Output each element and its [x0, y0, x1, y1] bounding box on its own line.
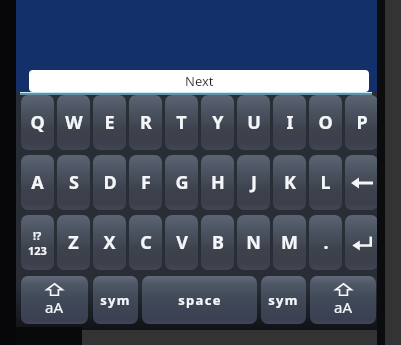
button[interactable]: sym	[261, 276, 306, 324]
staticText: N	[246, 230, 261, 255]
button[interactable]: F	[129, 155, 162, 210]
other: Backspace	[351, 173, 373, 193]
button[interactable]: U	[237, 95, 270, 150]
staticText: M	[281, 230, 298, 255]
staticText: R	[140, 110, 152, 135]
button[interactable]: B	[201, 215, 234, 270]
staticText: space	[178, 291, 222, 309]
staticText: aA	[334, 297, 353, 317]
button[interactable]: D	[93, 155, 126, 210]
button[interactable]: N	[237, 215, 270, 270]
staticText: O	[318, 110, 333, 135]
button[interactable]: Enter	[345, 215, 378, 270]
button[interactable]: T	[165, 95, 198, 150]
staticText: A	[31, 170, 44, 195]
staticText: Q	[30, 110, 45, 135]
staticText: 123	[28, 243, 47, 258]
other: Symbols and numbers	[28, 228, 47, 258]
button[interactable]: Y	[201, 95, 234, 150]
staticText: G	[175, 170, 189, 195]
button[interactable]: H	[201, 155, 234, 210]
staticText: .	[323, 230, 329, 255]
button[interactable]: S	[57, 155, 90, 210]
other: Shift	[334, 283, 353, 317]
other: Shift	[45, 283, 64, 317]
staticText: K	[284, 170, 296, 195]
button[interactable]: Z	[57, 215, 90, 270]
staticText: sym	[268, 291, 299, 309]
button[interactable]: M	[273, 215, 306, 270]
staticText: X	[103, 230, 116, 255]
button[interactable]: L	[309, 155, 342, 210]
staticText: U	[247, 110, 261, 135]
button[interactable]: E	[93, 95, 126, 150]
button[interactable]: K	[273, 155, 306, 210]
staticText: C	[140, 230, 152, 255]
staticText: !?	[33, 228, 42, 243]
button[interactable]: V	[165, 215, 198, 270]
other: Enter	[351, 232, 372, 253]
button[interactable]: J	[237, 155, 270, 210]
staticText: J	[251, 170, 257, 195]
staticText: E	[104, 110, 115, 135]
button[interactable]: Shift	[21, 276, 88, 324]
staticText: T	[176, 110, 187, 135]
staticText: Next	[185, 72, 214, 90]
button[interactable]: C	[129, 215, 162, 270]
staticText: F	[141, 170, 151, 195]
staticText: B	[212, 230, 224, 255]
button[interactable]: W	[57, 95, 90, 150]
staticText: Y	[212, 110, 224, 135]
button[interactable]: Next	[29, 70, 369, 92]
staticText: S	[69, 170, 79, 195]
button[interactable]: X	[93, 215, 126, 270]
button[interactable]: G	[165, 155, 198, 210]
staticText: W	[65, 110, 83, 135]
staticText: L	[320, 170, 331, 195]
staticText: aA	[45, 297, 64, 317]
button[interactable]: sym	[93, 276, 138, 324]
button[interactable]: space	[142, 276, 257, 324]
button[interactable]: A	[21, 155, 54, 210]
staticText: P	[356, 110, 368, 135]
button[interactable]: Q	[21, 95, 54, 150]
staticText: sym	[100, 291, 131, 309]
button[interactable]: Shift	[310, 276, 376, 324]
button[interactable]: .	[309, 215, 342, 270]
button[interactable]: O	[309, 95, 342, 150]
staticText: V	[176, 230, 188, 255]
staticText: I	[286, 110, 294, 135]
button[interactable]: Symbols and numbers	[21, 215, 54, 270]
button[interactable]: I	[273, 95, 306, 150]
staticText: D	[103, 170, 117, 195]
button[interactable]: P	[345, 95, 378, 150]
button[interactable]: Backspace	[345, 155, 378, 210]
staticText: Z	[68, 230, 79, 255]
staticText: H	[211, 170, 225, 195]
button[interactable]: R	[129, 95, 162, 150]
